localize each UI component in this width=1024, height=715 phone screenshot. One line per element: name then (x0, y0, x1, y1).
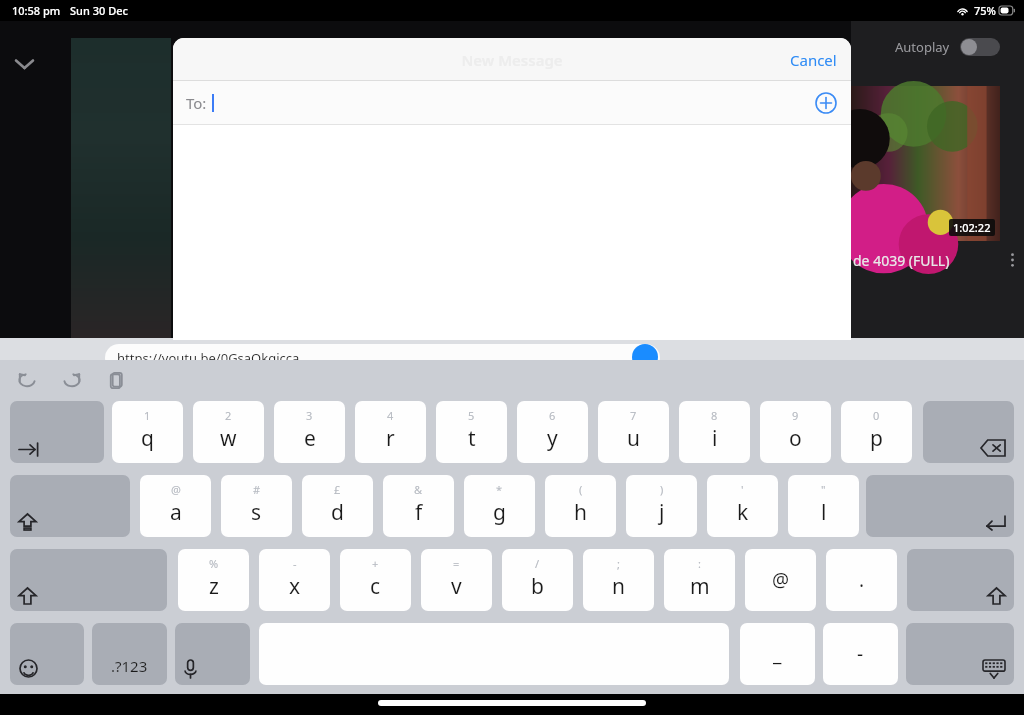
staticText: ' (741, 482, 744, 497)
staticText: 1 (144, 408, 151, 423)
staticText: Cancel (790, 50, 837, 70)
button[interactable]: @ (745, 549, 816, 611)
button[interactable]: # (221, 475, 292, 537)
button[interactable]: 2 (193, 401, 264, 463)
staticText: @ (772, 567, 790, 593)
button[interactable]: Undo (12, 365, 42, 395)
button[interactable]: 6 (517, 401, 588, 463)
button[interactable]: - (823, 623, 898, 685)
staticText: r (386, 424, 395, 453)
staticText: x (289, 572, 301, 601)
button[interactable]: Add contact (809, 86, 843, 120)
button[interactable]: * (464, 475, 535, 537)
button[interactable]: 4 (355, 401, 426, 463)
button[interactable]: £ (302, 475, 373, 537)
staticText: Sun 30 Dec (70, 3, 128, 18)
staticText: ) (660, 482, 664, 497)
staticText: f (415, 498, 423, 527)
button[interactable]: 8 (679, 401, 750, 463)
staticText: 2 (225, 408, 232, 423)
staticText: 3 (306, 408, 313, 423)
staticText: .?123 (111, 656, 148, 676)
staticText: m (690, 572, 710, 601)
staticText: l (821, 498, 827, 527)
staticText: : (698, 556, 701, 571)
staticText: # (253, 482, 261, 497)
staticText: " (821, 482, 826, 497)
button[interactable]: Dictate (175, 623, 250, 685)
button[interactable]: 7 (598, 401, 669, 463)
button[interactable]: To: (173, 81, 851, 125)
button[interactable]: More options (1000, 248, 1024, 272)
button[interactable]: 3 (274, 401, 345, 463)
staticText: v (451, 572, 462, 601)
staticText: . (859, 567, 865, 593)
button[interactable]: 1 (112, 401, 183, 463)
staticText: = (453, 556, 460, 571)
button[interactable]: . (826, 549, 897, 611)
staticText: q (141, 424, 154, 453)
button[interactable]: % (178, 549, 249, 611)
staticText: 9 (792, 408, 799, 423)
button[interactable]: Emoji (10, 623, 84, 685)
staticText: a (170, 498, 182, 527)
staticText: £ (334, 482, 341, 497)
button[interactable]: _ (740, 623, 815, 685)
staticText: t (468, 424, 476, 453)
button[interactable]: Camera (16, 340, 42, 366)
button[interactable]: 1:02:22 (851, 86, 1000, 241)
button[interactable]: & (383, 475, 454, 537)
staticText: - (293, 556, 297, 571)
staticText: y (547, 424, 558, 453)
staticText: https://youtu.be/0GsaQkgjcca (117, 349, 300, 367)
button[interactable]: ) (626, 475, 697, 537)
button[interactable]: - (259, 549, 330, 611)
staticText: ; (617, 556, 620, 571)
staticText: ( (579, 482, 583, 497)
button[interactable]: Cancel (776, 38, 851, 81)
button[interactable]: = (421, 549, 492, 611)
button[interactable]: ; (583, 549, 654, 611)
button[interactable]: 9 (760, 401, 831, 463)
staticText: s (251, 498, 262, 527)
staticText: Autoplay (895, 38, 950, 56)
button[interactable]: Return (866, 475, 1014, 537)
button[interactable]: Shift (10, 549, 167, 611)
staticText: 75% (974, 3, 996, 18)
staticText: z (209, 572, 219, 601)
button[interactable]: + (340, 549, 411, 611)
staticText: 4 (387, 408, 394, 423)
button[interactable]: Autoplay (851, 21, 1024, 73)
staticText: 8 (711, 408, 718, 423)
button[interactable]: Shift (907, 549, 1014, 611)
button[interactable]: Send (632, 344, 658, 370)
staticText: 6 (549, 408, 556, 423)
staticText: o (789, 424, 802, 453)
button[interactable]: 0 (841, 401, 912, 463)
button[interactable]: @ (140, 475, 211, 537)
button[interactable]: Sticker (60, 340, 86, 366)
staticText: i (712, 424, 718, 453)
button[interactable]: " (788, 475, 859, 537)
staticText: To: (186, 93, 207, 113)
button[interactable]: Caps lock (10, 475, 130, 537)
staticText: c (370, 572, 381, 601)
button[interactable]: https://youtu.be/0GsaQkgjcca (105, 344, 660, 372)
button[interactable]: Tab (10, 401, 104, 463)
button[interactable]: : (664, 549, 735, 611)
button[interactable]: / (502, 549, 573, 611)
button[interactable]: Hide keyboard (906, 623, 1014, 685)
button[interactable]: Backspace (923, 401, 1014, 463)
staticText: * (496, 482, 503, 497)
staticText: g (493, 498, 506, 527)
button[interactable]: .?123 (92, 623, 167, 685)
button[interactable]: 5 (436, 401, 507, 463)
button[interactable]: Paste (102, 365, 132, 395)
button[interactable]: Redo (57, 365, 87, 395)
staticText: de 4039 (FULL) (853, 251, 950, 270)
button[interactable]: ( (545, 475, 616, 537)
button[interactable]: Collapse (8, 48, 40, 80)
button[interactable]: ' (707, 475, 778, 537)
